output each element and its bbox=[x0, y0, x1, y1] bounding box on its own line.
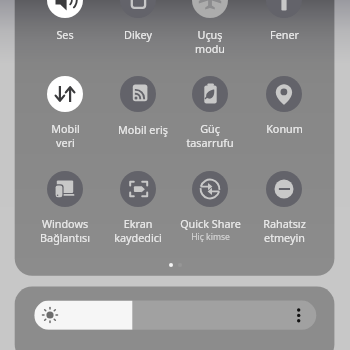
button[interactable]: Güç tasarrufu bbox=[174, 76, 246, 150]
button[interactable]: Ekran kaydedici bbox=[102, 171, 174, 245]
button[interactable]: Uçuş modu bbox=[174, 0, 246, 56]
staticText: Mobil veri bbox=[51, 121, 80, 150]
button[interactable]: Mobil veri bbox=[29, 76, 101, 150]
staticText: Uçuş modu bbox=[195, 27, 225, 56]
staticText: Dikey bbox=[124, 27, 152, 42]
button[interactable]: Quick Share bbox=[174, 171, 246, 243]
staticText: Windows Bağlantısı bbox=[40, 216, 90, 245]
button[interactable]: Dikey bbox=[102, 0, 174, 42]
button[interactable] bbox=[102, 76, 174, 136]
button[interactable]: Konum bbox=[248, 76, 320, 136]
staticText: Güç tasarrufu bbox=[186, 121, 234, 150]
staticText: Quick Share bbox=[180, 216, 241, 231]
button[interactable]: Fener bbox=[248, 0, 320, 42]
staticText: Hiç kimse bbox=[191, 231, 230, 243]
button[interactable]: Ses bbox=[29, 0, 101, 42]
staticText: Ses bbox=[56, 27, 74, 42]
staticText: Mobil erişim n bbox=[118, 122, 168, 137]
button[interactable]: Brightness bbox=[34, 300, 317, 331]
button[interactable]: More options bbox=[292, 304, 306, 327]
button[interactable]: Rahatsız etmeyin bbox=[248, 171, 320, 245]
staticText: Rahatsız etmeyin bbox=[263, 216, 306, 245]
staticText: Konum bbox=[266, 121, 303, 136]
staticText: Ekran kaydedici bbox=[114, 216, 162, 245]
button[interactable]: Windows Bağlantısı bbox=[29, 171, 101, 245]
staticText: Fener bbox=[270, 27, 299, 42]
